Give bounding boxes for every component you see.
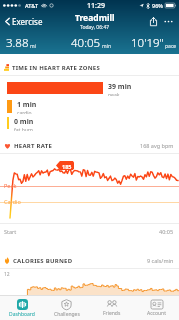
staticText: pace: [165, 43, 177, 50]
staticText: fat burn: [14, 127, 33, 131]
staticText: peak: [108, 92, 120, 96]
staticText: Friends: [103, 310, 121, 317]
button[interactable]: Friends: [89, 296, 134, 320]
staticText: 11:29: [87, 1, 105, 11]
staticText: 12: [4, 271, 10, 278]
button[interactable]: More options: [161, 14, 176, 29]
staticText: 3.88: [6, 35, 29, 51]
staticText: Challenges: [54, 311, 80, 318]
staticText: Treadmill: [75, 12, 115, 24]
staticText: HEART RATE: [14, 142, 53, 150]
staticText: 1 min: [17, 100, 37, 110]
staticText: 40:05: [71, 35, 101, 51]
button[interactable]: Share: [146, 14, 161, 29]
staticText: 96%: [152, 2, 163, 9]
staticText: Peak: [4, 182, 17, 189]
staticText: 0 min: [14, 117, 34, 127]
staticText: 39 min: [108, 82, 132, 92]
staticText: Exercise: [12, 16, 43, 27]
staticText: mi: [30, 43, 36, 50]
staticText: 10'19": [131, 35, 164, 51]
button[interactable]: Challenges: [44, 296, 89, 320]
staticText: AT&T: [25, 2, 39, 9]
button[interactable]: Exercise: [3, 13, 45, 30]
staticText: 40:05: [159, 228, 174, 235]
staticText: cardio: [17, 110, 32, 114]
staticText: Account: [147, 310, 167, 317]
staticText: min: [102, 43, 112, 50]
button[interactable]: Dashboard: [0, 296, 44, 320]
staticText: 168 avg bpm: [140, 142, 174, 149]
staticText: Dashboard: [9, 311, 35, 318]
staticText: 185: [62, 163, 72, 170]
staticText: 9 cals/min: [147, 257, 174, 264]
staticText: CALORIES BURNED: [13, 257, 73, 265]
staticText: TIME IN HEART RATE ZONES: [12, 64, 100, 72]
staticText: Start: [4, 228, 17, 235]
button[interactable]: Account: [134, 296, 179, 320]
staticText: Cardio: [4, 198, 21, 205]
staticText: Today, 06:47: [80, 24, 110, 31]
